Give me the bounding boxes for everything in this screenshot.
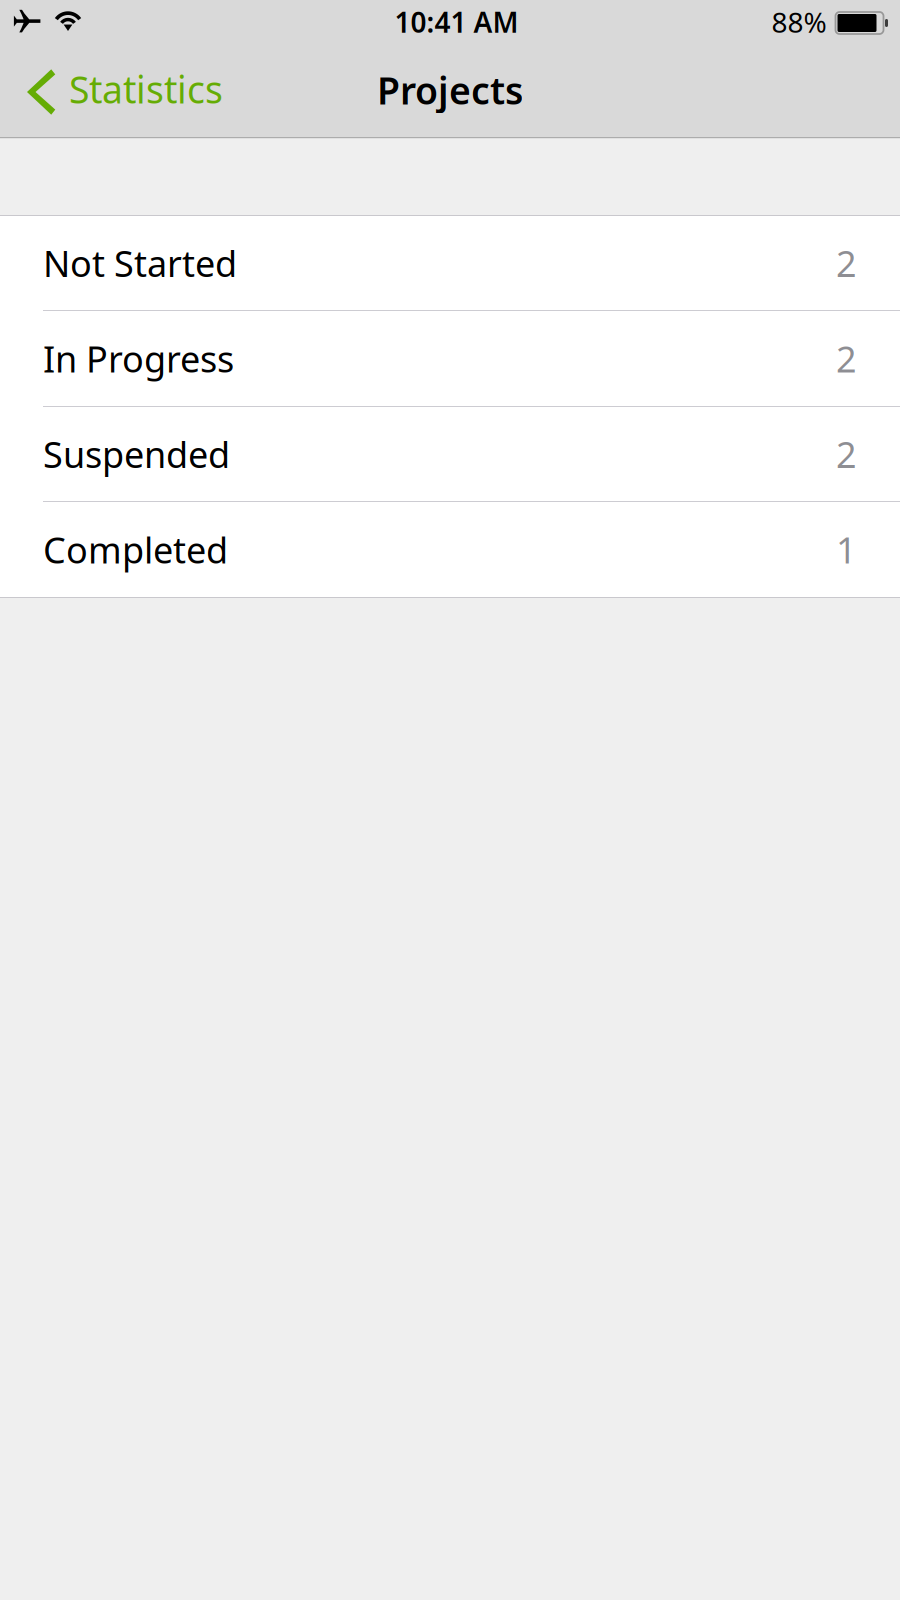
button[interactable]: In Progress [0,311,900,407]
staticText: 1 [836,526,857,573]
staticText: 2 [836,335,857,382]
button[interactable]: Not Started [0,216,900,311]
staticText: Statistics [69,64,223,114]
staticText: In Progress [43,335,234,382]
staticText: 88% [771,3,826,41]
staticText: 10:41 AM [394,3,518,41]
button[interactable]: Suspended [0,407,900,502]
staticText: Projects [377,65,523,115]
staticText: Suspended [43,430,230,478]
staticText: Not Started [43,239,237,287]
staticText: Completed [43,526,228,573]
button[interactable]: Completed [0,502,900,597]
button[interactable]: Back to Statistics [0,50,233,137]
staticText: 2 [836,430,857,478]
staticText: 2 [836,239,857,287]
